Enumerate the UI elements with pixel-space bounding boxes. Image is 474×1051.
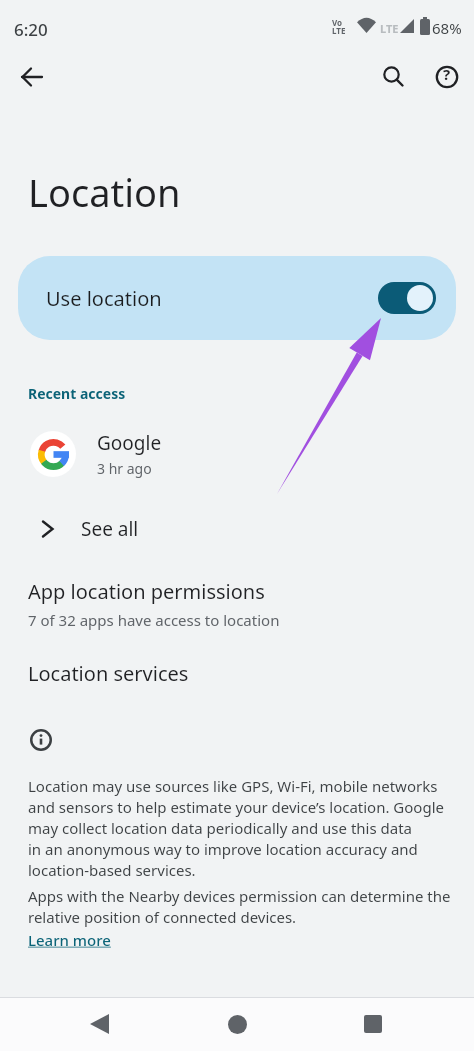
button[interactable]: Use location [18,256,456,340]
staticText: Google [97,430,162,456]
button[interactable]: Learn more [28,930,111,950]
staticText: Location [28,166,181,218]
staticText: Apps with the Nearby devices permission … [28,886,451,928]
button[interactable] [215,1002,259,1046]
staticText: 68% [432,18,462,38]
button[interactable] [371,55,415,99]
button[interactable] [351,1002,395,1046]
button[interactable]: App location permissions [0,578,474,630]
button[interactable]: Google [0,426,474,482]
staticText: Recent access [28,384,126,403]
button[interactable]: See all [0,508,474,550]
staticText: Vo LTE [332,17,346,36]
staticText: 7 of 32 apps have access to location [28,610,280,630]
staticText: See all [81,516,139,542]
button[interactable] [10,55,54,99]
staticText: Location services [28,660,189,687]
button[interactable]: ? [425,55,469,99]
staticText: ? [443,64,451,84]
staticText: Use location [46,285,162,312]
staticText: Learn more [28,930,111,950]
staticText: 6:20 [14,18,48,41]
button[interactable] [77,1002,121,1046]
staticText: 3 hr ago [97,459,152,478]
staticText: App location permissions [28,578,265,605]
staticText: Location may use sources like GPS, Wi-Fi… [28,776,444,881]
staticText: LTE [380,21,399,36]
button[interactable]: Location services [0,652,474,692]
